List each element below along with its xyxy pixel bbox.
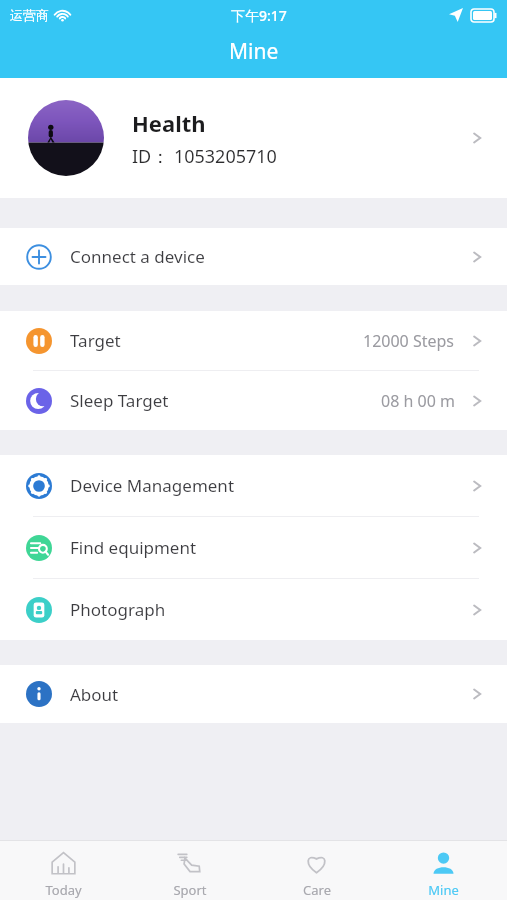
- staticText: Today: [45, 881, 82, 899]
- staticText: Mine: [229, 37, 279, 66]
- staticText: 12000 Steps: [363, 330, 455, 352]
- button[interactable]: Device Management: [0, 455, 507, 516]
- staticText: Connect a device: [70, 245, 205, 268]
- staticText: 运营商: [10, 7, 49, 23]
- staticText: Target: [70, 329, 121, 352]
- button[interactable]: Find equipment: [0, 517, 507, 578]
- staticText: 08 h 00 m: [381, 390, 455, 412]
- staticText: 下午9:17: [231, 6, 287, 25]
- button[interactable]: Mine: [380, 841, 507, 900]
- button[interactable]: Sleep Target: [0, 371, 507, 430]
- staticText: Health: [132, 108, 206, 138]
- staticText: Sleep Target: [70, 389, 169, 412]
- staticText: Photograph: [70, 598, 166, 621]
- staticText: Care: [303, 881, 331, 899]
- button[interactable]: Target: [0, 311, 507, 370]
- button[interactable]: Care: [253, 841, 380, 900]
- button[interactable]: About: [0, 665, 507, 723]
- staticText: About: [70, 683, 119, 706]
- button[interactable]: Sport: [126, 841, 253, 900]
- button[interactable]: Today: [0, 841, 126, 900]
- staticText: Sport: [173, 881, 207, 899]
- staticText: ID： 1053205710: [132, 144, 277, 169]
- staticText: Mine: [428, 881, 459, 899]
- staticText: Device Management: [70, 474, 235, 497]
- button[interactable]: Health: [0, 78, 507, 198]
- staticText: Find equipment: [70, 536, 197, 559]
- button[interactable]: Photograph: [0, 579, 507, 640]
- button[interactable]: Connect a device: [0, 228, 507, 285]
